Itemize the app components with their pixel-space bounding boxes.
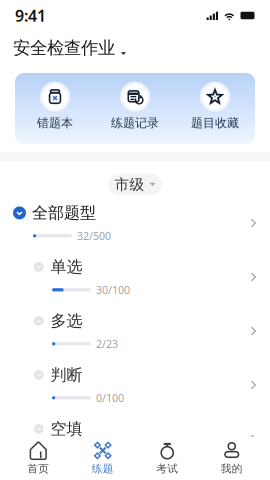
button[interactable]: 练题记录	[95, 82, 175, 130]
staticText: 错题本	[37, 116, 73, 130]
staticText: 32/500	[77, 229, 111, 243]
staticText: 0/100	[96, 391, 124, 405]
staticText: 2/23	[96, 337, 118, 351]
staticText: 安全检查作业	[13, 37, 115, 59]
button[interactable]: 题目收藏	[175, 82, 255, 130]
button[interactable]: 市级	[108, 174, 162, 195]
staticText: 市级	[114, 175, 144, 193]
staticText: 30/100	[96, 283, 130, 297]
staticText: 练题记录	[111, 116, 159, 130]
staticText: 练题	[92, 462, 114, 475]
button[interactable]: 判断	[0, 358, 270, 412]
button[interactable]: 考试	[135, 437, 199, 480]
staticText: 全部题型	[32, 203, 96, 223]
button[interactable]: 空填	[0, 412, 270, 466]
staticText: 空填	[50, 419, 82, 439]
staticText: 我的	[221, 462, 243, 475]
button[interactable]: 错题本	[15, 82, 95, 130]
staticText: 考试	[156, 462, 178, 475]
staticText: 9:41	[15, 5, 46, 26]
staticText: 多选	[50, 311, 82, 331]
button[interactable]: 单选	[0, 250, 270, 304]
button[interactable]: 全部题型	[0, 196, 270, 250]
staticText: 0/50	[96, 445, 118, 459]
staticText: 题目收藏	[191, 116, 239, 130]
staticText: 判断	[50, 365, 82, 385]
button[interactable]: 首页	[6, 437, 70, 480]
staticText: 单选	[50, 257, 82, 277]
staticText: 首页	[27, 462, 49, 475]
button[interactable]: 练题	[70, 437, 135, 480]
button[interactable]: 多选	[0, 304, 270, 358]
button[interactable]: 我的	[199, 437, 264, 480]
